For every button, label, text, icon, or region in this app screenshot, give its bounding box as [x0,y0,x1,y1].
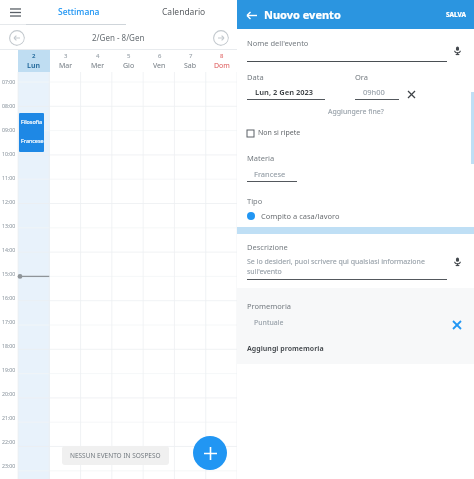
staticText: 08:00 [2,102,16,109]
staticText: 8 [220,52,224,60]
button[interactable]: Aggiungi promemoria [237,342,474,356]
staticText: Promemoria [247,301,292,311]
button[interactable]: Settimana [26,0,131,24]
button[interactable]: 4 [82,50,113,72]
staticText: 14:00 [2,246,16,253]
staticText: Settimana [58,6,100,18]
staticText: 4 [96,52,100,60]
staticText: 09:00 [2,126,16,133]
button[interactable]: Menu [6,3,24,21]
staticText: Mar [59,61,73,71]
staticText: Lun, 2 Gen 2023 [255,87,314,97]
staticText: 2 [32,52,36,60]
staticText: Data [247,72,264,82]
staticText: 6 [158,52,162,60]
staticText: Descrizione [247,242,288,252]
staticText: 2/Gen - 8/Gen [92,32,145,43]
button[interactable]: Remove reminder [450,318,464,332]
button[interactable]: Voice input description [450,254,464,268]
staticText: Ven [153,61,166,71]
button[interactable]: Filosofia [19,113,44,152]
button[interactable]: Next week [212,29,229,46]
staticText: 20:00 [2,390,16,397]
staticText: 11:00 [2,174,16,181]
staticText: Nuovo evento [264,7,341,22]
staticText: Tipo [247,196,263,206]
staticText: 5 [127,52,131,60]
staticText: 10:00 [2,150,16,157]
staticText: Ora [355,72,369,82]
staticText: 15:00 [2,270,16,277]
staticText: Sab [184,61,197,71]
button[interactable]: 09h00 [355,87,399,100]
staticText: 7 [189,52,193,60]
button[interactable]: 3 [50,50,82,72]
staticText: Calendario [162,6,206,18]
staticText: Nome dell'evento [247,38,309,48]
button[interactable]: 6 [144,50,175,72]
staticText: Compito a casa/lavoro [261,211,340,221]
staticText: 07:00 [2,78,16,85]
button[interactable]: 8 [206,50,237,72]
staticText: Aggiungi promemoria [247,344,324,354]
button[interactable]: 5 [113,50,144,72]
button[interactable]: Compito a casa/lavoro [247,211,464,221]
staticText: Puntuale [254,318,284,328]
staticText: 21:00 [2,414,16,421]
staticText: Dom [214,61,230,71]
staticText: SALVA [446,10,467,19]
staticText: 18:00 [2,342,16,349]
staticText: 16:00 [2,294,16,301]
staticText: Francese [254,169,286,179]
button[interactable]: 2 [18,50,50,72]
staticText: Non si ripete [258,128,301,138]
button[interactable]: SALVA [444,7,469,22]
staticText: 22:00 [2,438,16,445]
staticText: 13:00 [2,222,16,229]
button[interactable]: Voice input name [450,43,464,57]
staticText: sull'evento [247,267,282,277]
staticText: 09h00 [363,87,385,97]
staticText: Materia [247,153,275,163]
staticText: Aggiungere fine? [328,107,384,117]
button[interactable]: Puntuale [237,318,474,332]
staticText: 19:00 [2,366,16,373]
button[interactable]: Calendario [131,0,237,24]
button[interactable]: Back [243,7,259,23]
button[interactable]: Add event [193,436,227,470]
staticText: Filosofia [21,118,42,125]
staticText: Gio [123,61,135,71]
staticText: NESSUN EVENTO IN SOSPESO [70,451,161,460]
staticText: 23:00 [2,462,16,469]
staticText: Se lo desideri, puoi scrivere qui qualsi… [247,257,425,267]
button[interactable]: NESSUN EVENTO IN SOSPESO [70,451,161,460]
button[interactable]: Non si ripete [237,125,474,141]
staticText: 3 [64,52,68,60]
button[interactable]: Lun, 2 Gen 2023 [247,87,325,100]
staticText: Mer [91,61,105,71]
staticText: Francese [21,137,44,144]
button[interactable]: Previous week [8,29,25,46]
button[interactable]: Clear time [405,88,417,100]
button[interactable]: Aggiungere fine? [325,104,387,120]
staticText: 12:00 [2,198,16,205]
button[interactable]: Francese [247,169,297,182]
staticText: Lun [27,61,41,71]
button[interactable]: 7 [175,50,206,72]
staticText: 17:00 [2,318,16,325]
